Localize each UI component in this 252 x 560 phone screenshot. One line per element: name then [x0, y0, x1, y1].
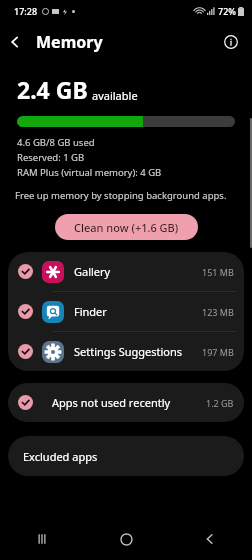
button[interactable]: Home: [104, 518, 148, 560]
button[interactable]: Apps not used recently: [8, 383, 244, 422]
staticText: Free up memory by stopping background ap…: [15, 189, 237, 202]
button[interactable]: Back: [0, 27, 30, 57]
button[interactable]: Recent apps: [20, 518, 64, 560]
staticText: 1.2 GB: [206, 397, 234, 409]
staticText: Excluded apps: [23, 449, 98, 464]
staticText: 4.6 GB/8 GB used: [17, 136, 95, 149]
staticText: Gallery: [74, 264, 202, 279]
staticText: available: [92, 88, 138, 103]
button[interactable]: Gallery: [8, 252, 244, 291]
button[interactable]: Finder: [8, 292, 244, 331]
staticText: Settings Suggestions: [74, 344, 202, 359]
button[interactable]: Excluded apps: [8, 436, 244, 476]
button[interactable]: Back: [188, 518, 232, 560]
staticText: RAM Plus (virtual memory): 4 GB: [17, 166, 162, 179]
button[interactable]: Information: [216, 27, 246, 57]
staticText: Clean now (+1.6 GB): [74, 220, 179, 235]
staticText: Finder: [74, 304, 202, 319]
staticText: 2.4 GB: [17, 74, 88, 105]
staticText: 197 MB: [202, 346, 234, 358]
staticText: 151 MB: [202, 266, 234, 278]
staticText: 72%: [218, 5, 236, 17]
button[interactable]: Clean now (+1.6 GB): [55, 214, 198, 240]
staticText: 17:28: [14, 5, 38, 17]
staticText: Reserved: 1 GB: [17, 151, 85, 164]
button[interactable]: Settings Suggestions: [8, 332, 244, 371]
staticText: Memory: [36, 31, 103, 53]
staticText: Apps not used recently: [52, 395, 206, 410]
staticText: 123 MB: [202, 306, 234, 318]
